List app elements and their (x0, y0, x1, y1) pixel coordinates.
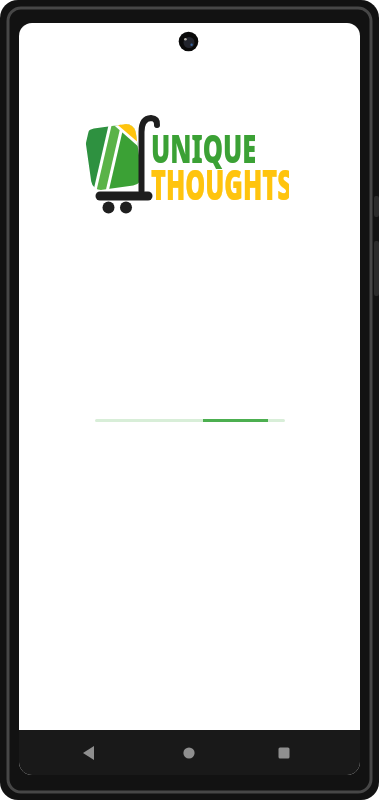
button[interactable] (175, 739, 203, 767)
button[interactable]: UNIQUE (85, 113, 315, 238)
staticText: THOUGHTS (151, 155, 289, 212)
button[interactable] (270, 739, 298, 767)
staticText: UNIQUE (151, 122, 257, 174)
button[interactable] (75, 739, 103, 767)
